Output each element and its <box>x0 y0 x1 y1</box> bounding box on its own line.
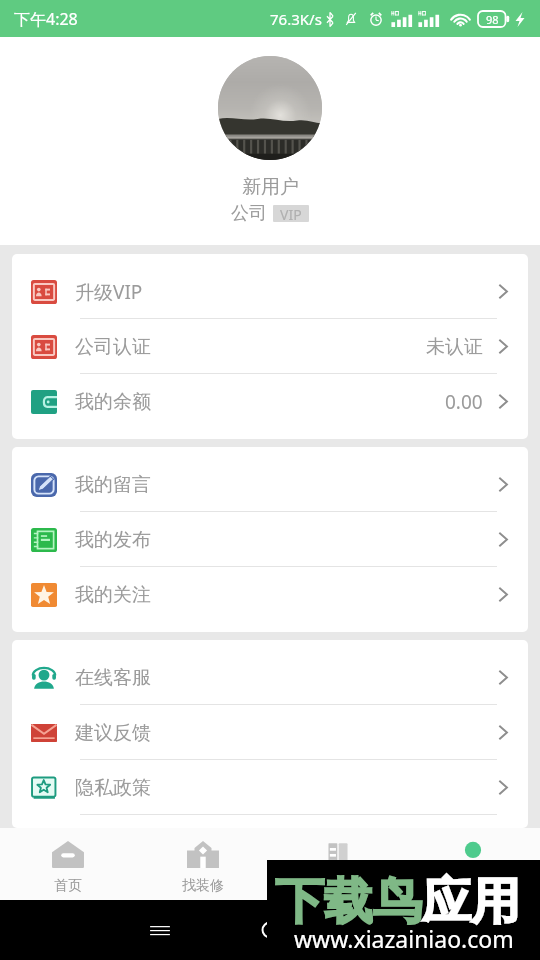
button[interactable]: 在线客服 <box>12 650 528 705</box>
staticText: 我的发布 <box>75 528 151 552</box>
button[interactable]: 公司认证 <box>12 319 528 374</box>
button[interactable]: 我的余额 <box>12 374 528 429</box>
other: Home <box>259 919 281 941</box>
staticText: 我的关注 <box>75 583 151 607</box>
staticText: 新用户 <box>242 175 299 199</box>
staticText: VIP <box>280 205 302 222</box>
button[interactable]: 我的 <box>405 828 540 900</box>
staticText: 升级VIP <box>75 279 143 305</box>
staticText: 在线客服 <box>75 666 151 690</box>
button[interactable]: 找装修 <box>135 828 270 900</box>
staticText: 76.3K/s <box>270 9 322 29</box>
staticText: 我的留言 <box>75 473 151 497</box>
button[interactable]: 消息 <box>270 828 405 900</box>
staticText: 应用 <box>422 871 520 933</box>
button[interactable]: 我的留言 <box>12 457 528 512</box>
button[interactable]: 升级VIP <box>12 264 528 319</box>
staticText: 我的 <box>459 877 487 895</box>
staticText: 我的余额 <box>75 390 151 414</box>
staticText: 未认证 <box>426 335 483 359</box>
button[interactable]: 我的发布 <box>12 512 528 567</box>
staticText: 下午4:28 <box>14 8 78 30</box>
staticText: 建议反馈 <box>75 721 151 745</box>
button[interactable]: 我的关注 <box>12 567 528 622</box>
staticText: 98 <box>486 12 499 27</box>
staticText: 找装修 <box>182 877 224 895</box>
staticText: 消息 <box>324 877 352 895</box>
button[interactable]: 隐私政策 <box>12 760 528 815</box>
staticText: 下载鸟 <box>275 871 422 933</box>
staticText: 0.00 <box>445 389 483 415</box>
other: Recents <box>149 919 171 941</box>
staticText: 公司认证 <box>75 335 151 359</box>
button[interactable]: 建议反馈 <box>12 705 528 760</box>
button[interactable]: 首页 <box>0 828 135 900</box>
staticText: www.xiazainiao.com <box>294 923 514 954</box>
staticText: 隐私政策 <box>75 776 151 800</box>
staticText: 首页 <box>54 877 82 895</box>
button[interactable]: Profile photo <box>218 56 322 160</box>
staticText: 公司 <box>231 202 267 225</box>
